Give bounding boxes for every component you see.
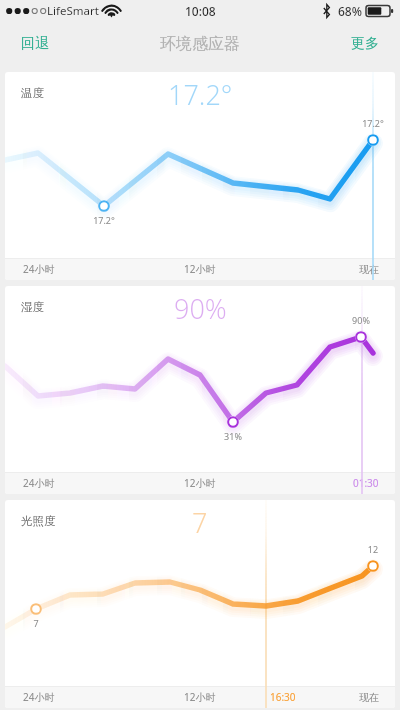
staticText: 温度: [21, 86, 44, 100]
staticText: 更多: [351, 35, 379, 53]
button[interactable]: 光照度: [5, 500, 395, 708]
staticText: 12小时: [184, 476, 216, 490]
staticText: 68%: [338, 3, 362, 19]
staticText: 10:08: [185, 3, 216, 19]
staticText: 现在: [359, 263, 379, 276]
staticText: 90%: [174, 290, 227, 327]
staticText: 环境感应器: [160, 34, 240, 54]
staticText: 12小时: [184, 262, 216, 276]
staticText: 12: [353, 543, 393, 555]
staticText: 17.2°: [84, 214, 124, 226]
staticText: 17.2°: [168, 76, 233, 113]
staticText: 24小时: [23, 262, 55, 276]
staticText: 7: [192, 504, 208, 541]
staticText: LifeSmart: [47, 3, 99, 19]
button[interactable]: 湿度: [5, 286, 395, 494]
staticText: 12小时: [184, 690, 216, 704]
button[interactable]: 温度: [5, 72, 395, 280]
staticText: 光照度: [21, 514, 56, 528]
staticText: 90%: [341, 314, 381, 326]
staticText: 24小时: [23, 476, 55, 490]
staticText: 01:30: [353, 476, 379, 490]
staticText: 31%: [213, 430, 253, 442]
staticText: 湿度: [21, 300, 44, 314]
staticText: 16:30: [270, 690, 296, 704]
button[interactable]: 更多: [330, 25, 400, 63]
button[interactable]: 回退: [0, 25, 70, 63]
staticText: 现在: [359, 691, 379, 704]
staticText: 17.2°: [353, 117, 393, 129]
staticText: 7: [16, 617, 56, 629]
staticText: 24小时: [23, 690, 55, 704]
staticText: 回退: [21, 35, 49, 53]
